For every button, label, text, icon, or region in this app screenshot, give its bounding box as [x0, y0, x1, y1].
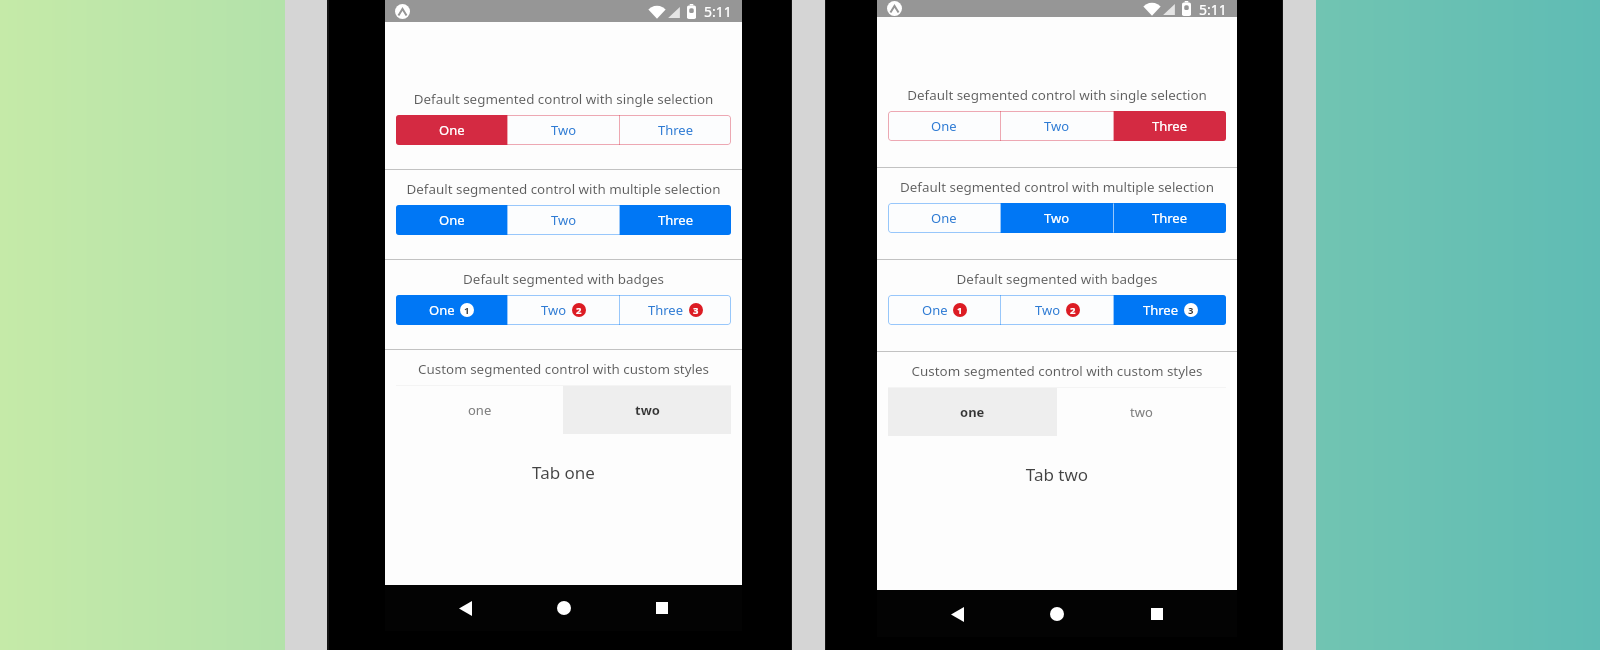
staticText: Two: [1044, 209, 1070, 227]
button[interactable]: Three: [1114, 111, 1226, 141]
staticText: Three: [658, 121, 694, 139]
button[interactable]: Three: [620, 295, 731, 325]
staticText: Two: [1044, 117, 1070, 135]
button[interactable]: two: [563, 386, 731, 434]
staticText: Default segmented with badges: [888, 270, 1226, 288]
staticText: 2: [576, 304, 582, 317]
button[interactable]: Two: [508, 115, 619, 145]
staticText: One: [429, 301, 455, 319]
button[interactable]: Home: [547, 591, 581, 625]
staticText: One: [439, 121, 465, 139]
button[interactable]: two: [1057, 388, 1226, 436]
button[interactable]: Two: [508, 205, 619, 235]
staticText: Three: [1152, 117, 1188, 135]
staticText: Default segmented control with multiple …: [396, 180, 731, 198]
button[interactable]: One: [396, 295, 507, 325]
button[interactable]: Two: [1001, 295, 1113, 325]
button[interactable]: Recent apps: [1140, 597, 1174, 631]
staticText: One: [931, 209, 957, 227]
button[interactable]: Three: [1114, 203, 1226, 233]
button[interactable]: Two: [1001, 111, 1113, 141]
staticText: Custom segmented control with custom sty…: [888, 362, 1226, 380]
button[interactable]: one: [396, 386, 563, 434]
staticText: one: [468, 401, 492, 419]
staticText: Two: [541, 301, 567, 319]
button[interactable]: One: [888, 203, 1000, 233]
staticText: 1: [464, 304, 470, 317]
button[interactable]: One: [888, 111, 1000, 141]
button[interactable]: One: [888, 295, 1000, 325]
button[interactable]: Back: [448, 591, 482, 625]
button[interactable]: Home: [1040, 597, 1074, 631]
staticText: Two: [551, 211, 577, 229]
staticText: 1: [957, 304, 963, 317]
staticText: Custom segmented control with custom sty…: [396, 360, 731, 378]
staticText: 2: [1070, 304, 1076, 317]
staticText: 5:11: [704, 2, 732, 21]
staticText: Two: [551, 121, 577, 139]
button[interactable]: Three: [620, 115, 731, 145]
button[interactable]: Three: [1114, 295, 1226, 325]
staticText: One: [439, 211, 465, 229]
button[interactable]: Two: [508, 295, 619, 325]
staticText: 3: [693, 304, 699, 317]
button[interactable]: One: [396, 115, 507, 145]
staticText: Default segmented control with single se…: [888, 86, 1226, 104]
staticText: Default segmented control with single se…: [396, 90, 731, 108]
button[interactable]: Two: [1001, 203, 1113, 233]
staticText: Three: [648, 301, 684, 319]
button[interactable]: one: [888, 388, 1057, 436]
staticText: Three: [1143, 301, 1179, 319]
button[interactable]: Three: [620, 205, 731, 235]
staticText: 3: [1188, 304, 1194, 317]
button[interactable]: One: [396, 205, 507, 235]
staticText: One: [922, 301, 948, 319]
staticText: two: [1130, 403, 1153, 421]
button[interactable]: Recent apps: [645, 591, 679, 625]
button[interactable]: Back: [940, 597, 974, 631]
staticText: Three: [1152, 209, 1188, 227]
staticText: two: [635, 401, 660, 419]
staticText: One: [931, 117, 957, 135]
staticText: Three: [658, 211, 694, 229]
staticText: one: [960, 403, 985, 421]
staticText: Default segmented control with multiple …: [888, 178, 1226, 196]
staticText: Default segmented with badges: [396, 270, 731, 288]
staticText: Tab two: [888, 463, 1226, 486]
staticText: 5:11: [1199, 0, 1227, 17]
staticText: Tab one: [396, 461, 731, 484]
staticText: Two: [1035, 301, 1061, 319]
